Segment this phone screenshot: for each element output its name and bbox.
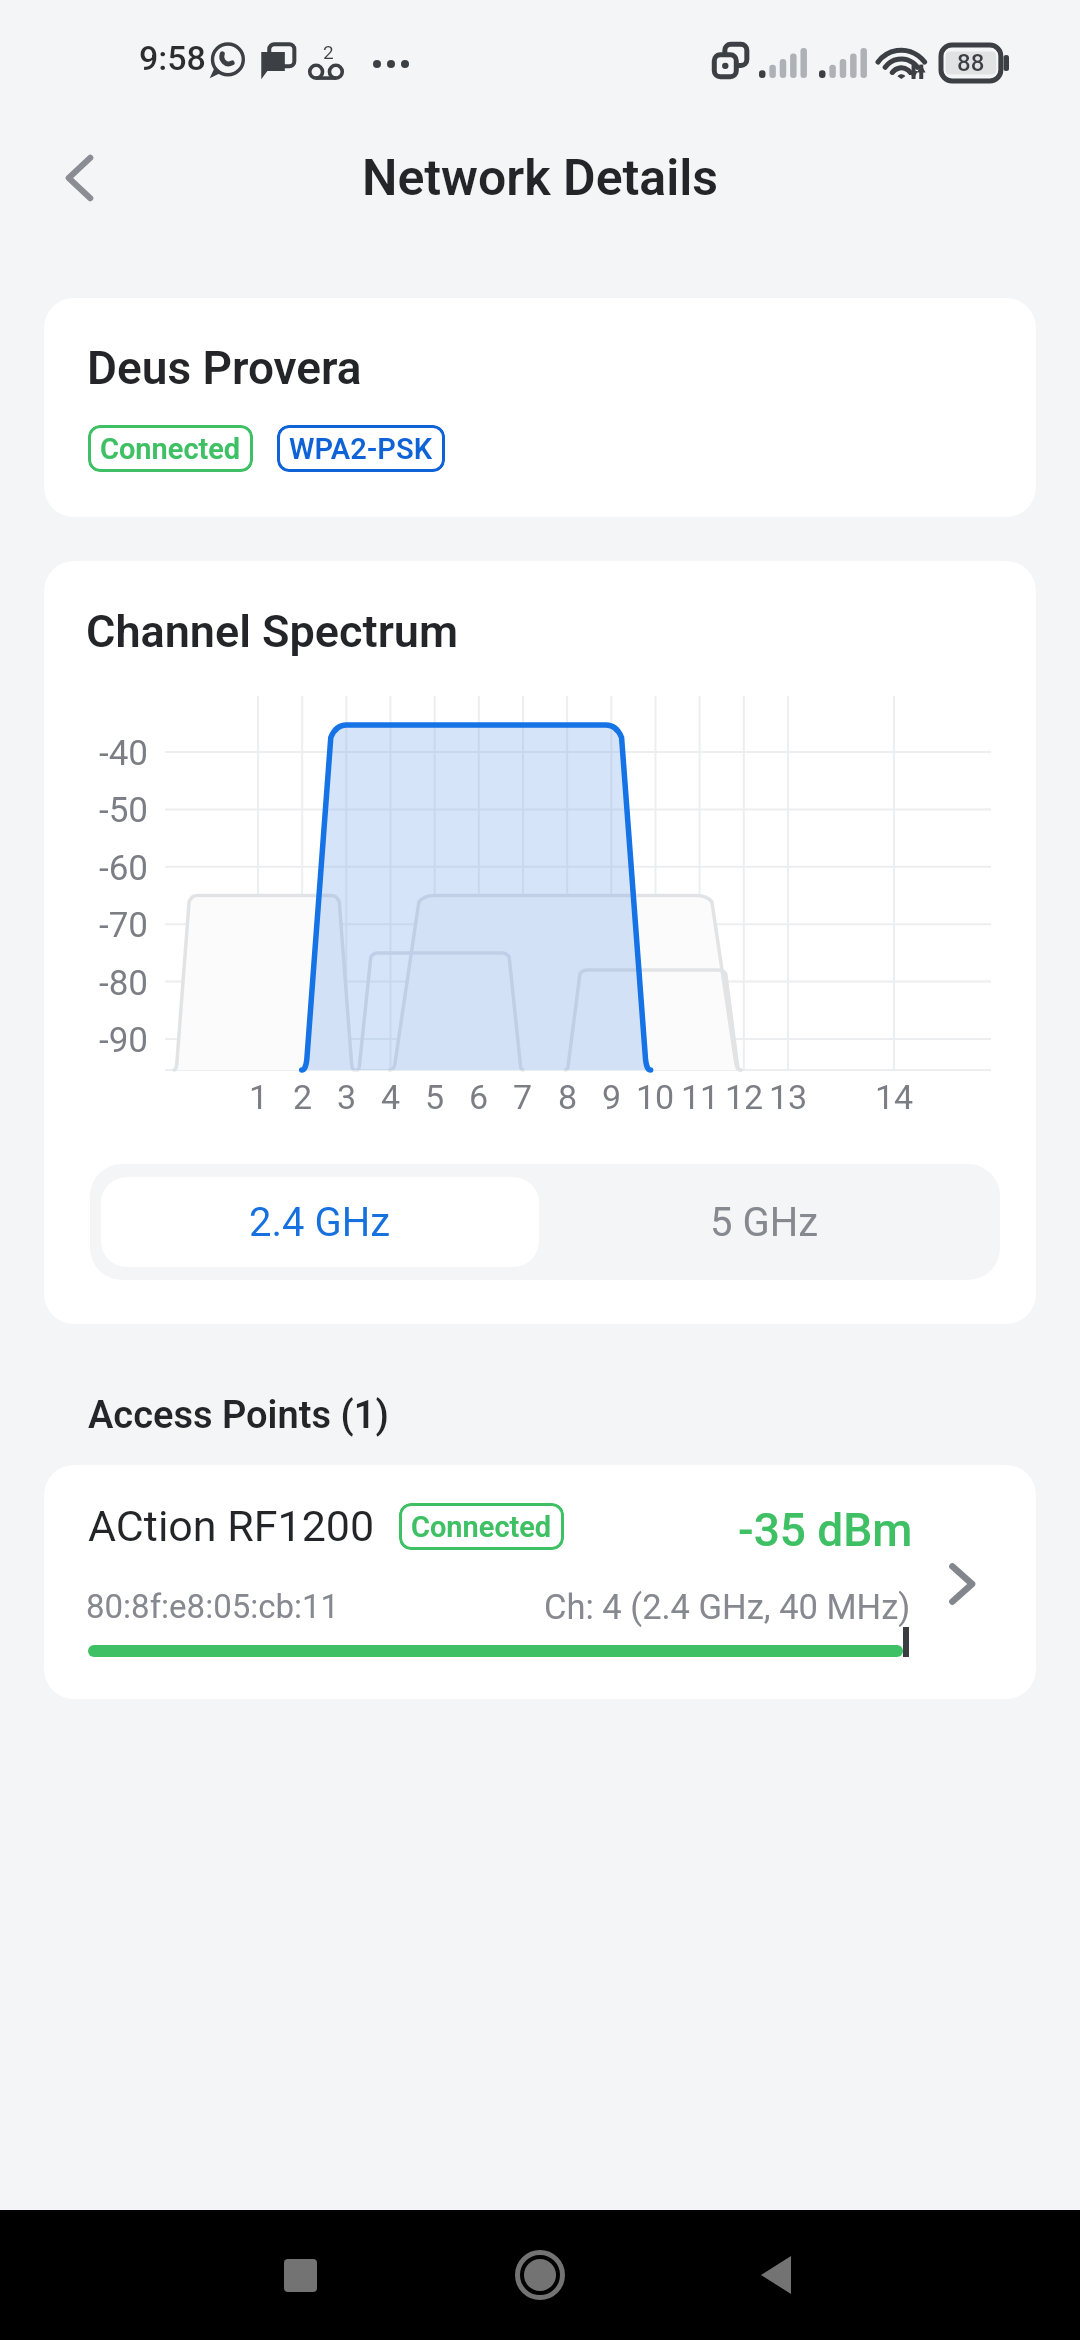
staticText: 9:58 bbox=[139, 38, 206, 78]
staticText: WPA2-PSK bbox=[289, 432, 433, 466]
staticText: -80 bbox=[99, 963, 149, 1004]
staticText: 2 bbox=[323, 41, 334, 63]
staticText: -40 bbox=[99, 733, 149, 774]
button[interactable]: Back bbox=[37, 136, 121, 220]
button[interactable]: Access point details bbox=[922, 1544, 1002, 1624]
staticText: 2.4 GHz bbox=[249, 1199, 391, 1246]
staticText: Deus Provera bbox=[87, 341, 362, 395]
staticText: 5 GHz bbox=[710, 1199, 819, 1246]
button[interactable]: Back bbox=[728, 2227, 824, 2323]
staticText: 4 bbox=[381, 1077, 401, 1117]
staticText: 12 bbox=[725, 1077, 764, 1117]
staticText: -70 bbox=[99, 905, 149, 946]
staticText: 6 bbox=[469, 1077, 489, 1117]
button[interactable]: 5 GHz bbox=[545, 1177, 983, 1267]
staticText: Connected bbox=[411, 1510, 552, 1544]
button[interactable]: Recents bbox=[252, 2227, 348, 2323]
staticText: 11 bbox=[681, 1077, 720, 1117]
staticText: ACtion RF1200 bbox=[88, 1501, 375, 1551]
staticText: Access Points (1) bbox=[88, 1393, 389, 1438]
button[interactable]: Home bbox=[492, 2227, 588, 2323]
button[interactable]: 2.4 GHz bbox=[101, 1177, 539, 1267]
staticText: 80:8f:e8:05:cb:11 bbox=[86, 1587, 340, 1626]
staticText: 7 bbox=[513, 1077, 533, 1117]
staticText: 8 bbox=[558, 1077, 578, 1117]
staticText: Network Details bbox=[362, 149, 718, 208]
staticText: 1 bbox=[249, 1077, 269, 1117]
staticText: -60 bbox=[99, 848, 149, 889]
staticText: 88 bbox=[957, 49, 985, 77]
staticText: 2 bbox=[293, 1077, 313, 1117]
staticText: Ch: 4 (2.4 GHz, 40 MHz) bbox=[544, 1587, 911, 1627]
staticText: Connected bbox=[100, 432, 241, 466]
staticText: -90 bbox=[99, 1020, 149, 1061]
staticText: 5 bbox=[425, 1077, 445, 1117]
staticText: Channel Spectrum bbox=[86, 605, 459, 658]
staticText: -35 dBm bbox=[738, 1503, 913, 1557]
staticText: 13 bbox=[769, 1077, 808, 1117]
button[interactable]: ACtion RF1200 bbox=[44, 1465, 1036, 1699]
staticText: 14 bbox=[875, 1077, 914, 1117]
button[interactable]: Deus Provera bbox=[44, 298, 1036, 517]
staticText: -50 bbox=[99, 790, 149, 831]
staticText: 10 bbox=[636, 1077, 675, 1117]
staticText: 9 bbox=[602, 1077, 622, 1117]
staticText: 3 bbox=[337, 1077, 357, 1117]
